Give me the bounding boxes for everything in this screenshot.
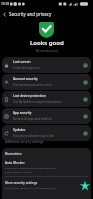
staticText: 10:18 (1, 2, 10, 6)
staticText: Biometrics (5, 151, 22, 155)
staticText: More security settings (5, 181, 38, 185)
staticText: App security (13, 111, 32, 115)
staticText: No security issues (36, 49, 58, 53)
staticText: Account security (13, 77, 38, 81)
button[interactable]: Lock screen (2, 57, 91, 73)
button[interactable]: Lost device protection (2, 91, 91, 107)
staticText: No harmful apps were detected (13, 117, 52, 121)
staticText: Security and privacy (9, 11, 52, 17)
staticText: Keep your phone safe by blocking threats… (5, 166, 57, 174)
staticText: Find My Mobile is ready to locate phone (13, 100, 62, 104)
staticText: Screen lock type is set (13, 66, 40, 70)
button[interactable]: App security (2, 108, 91, 124)
staticText: Your phone software is up to date (13, 134, 55, 138)
button[interactable]: Updates (2, 125, 91, 141)
staticText: Secure Folder, Secure Wi-Fi, Install unk… (5, 187, 56, 190)
button[interactable]: Account security (2, 74, 91, 90)
button[interactable]: Navigate up (0, 9, 9, 19)
staticText: Auto Blocker (5, 160, 25, 164)
staticText: Lock screen (13, 60, 31, 64)
button[interactable]: Biometrics (0, 148, 93, 158)
staticText: Looks good (30, 39, 64, 47)
button[interactable]: Auto Blocker (0, 158, 93, 176)
staticText: Lost device protection (13, 94, 46, 98)
staticText: Additional security settings (5, 140, 44, 144)
button[interactable]: More security settings (0, 176, 93, 195)
staticText: Updates (13, 128, 26, 132)
staticText: Your Samsung account is secure (13, 83, 53, 87)
